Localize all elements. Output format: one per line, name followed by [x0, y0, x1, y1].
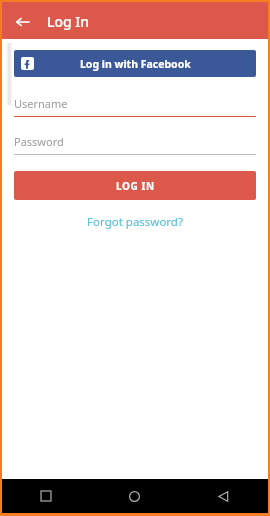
staticText: Password: [14, 134, 64, 149]
button[interactable]: Password: [14, 133, 256, 155]
staticText: Log in with Facebook: [80, 57, 191, 71]
button[interactable]: Forgot password?: [14, 213, 256, 231]
button[interactable]: Log in with Facebook: [14, 50, 256, 77]
button[interactable]: LOG IN: [14, 171, 256, 200]
button[interactable]: Back: [11, 10, 35, 34]
staticText: Log In: [47, 12, 90, 31]
button[interactable]: Username: [14, 95, 256, 117]
staticText: Username: [14, 96, 68, 111]
staticText: Forgot password?: [87, 214, 183, 230]
button[interactable]: Back: [179, 479, 268, 513]
button[interactable]: Recent apps: [2, 479, 90, 513]
staticText: LOG IN: [116, 179, 155, 193]
button[interactable]: Home: [90, 479, 179, 513]
